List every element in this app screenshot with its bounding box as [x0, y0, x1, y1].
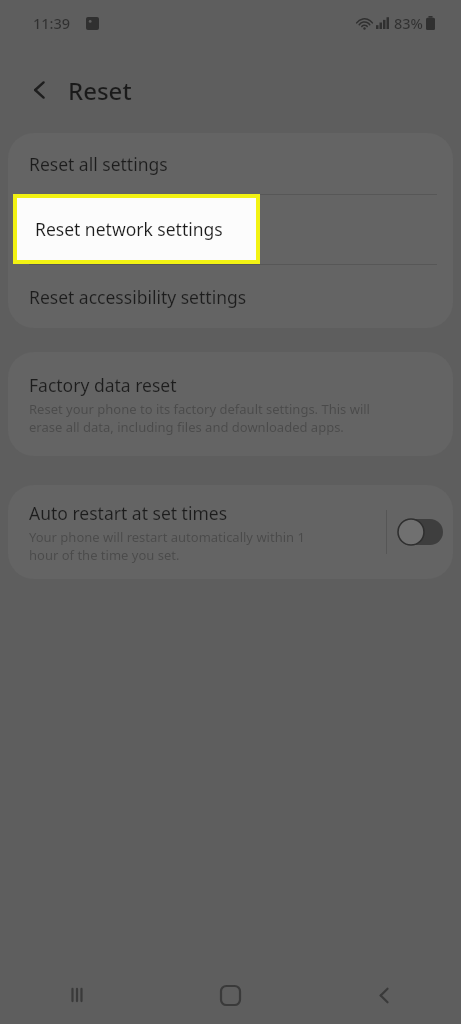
button[interactable]: Home — [153, 966, 307, 1024]
staticText: Reset network settings — [35, 217, 223, 241]
staticText: 83% — [394, 13, 423, 33]
button[interactable]: Recents — [0, 966, 153, 1024]
button[interactable]: Reset all settings — [8, 133, 453, 194]
button[interactable]: Reset network settings — [8, 195, 453, 264]
button[interactable]: Auto restart at set times — [29, 501, 378, 564]
button[interactable]: Back — [18, 68, 62, 112]
button[interactable]: Auto restart toggle — [387, 485, 453, 579]
staticText: Reset network settings — [29, 218, 217, 242]
staticText: Factory data reset — [29, 373, 177, 397]
button[interactable]: Factory data reset — [8, 352, 453, 456]
staticText: Reset your phone to its factory default … — [29, 400, 370, 436]
staticText: Your phone will restart automatically wi… — [29, 528, 305, 564]
staticText: Reset accessibility settings — [29, 285, 247, 309]
staticText: Reset all settings — [29, 152, 168, 176]
button[interactable]: Reset accessibility settings — [8, 265, 453, 328]
button[interactable]: Reset network settings — [17, 198, 256, 260]
staticText: Reset — [68, 74, 132, 107]
staticText: 11:39 — [33, 13, 71, 33]
staticText: Auto restart at set times — [29, 501, 228, 525]
